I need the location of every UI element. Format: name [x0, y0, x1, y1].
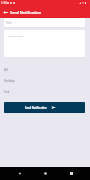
staticText: Holiday	[4, 79, 15, 83]
button[interactable]: Sick	[0, 86, 90, 97]
button[interactable]: Back	[12, 167, 26, 180]
staticText: 1:34	[1, 1, 7, 5]
staticText: Sick	[4, 90, 10, 94]
button[interactable]: Holiday	[0, 75, 90, 86]
button[interactable]: All	[0, 64, 90, 75]
button[interactable]: Title	[4, 18, 85, 27]
staticText: write your notes	[8, 35, 24, 38]
staticText: Send Notification	[25, 106, 47, 109]
button[interactable]: Back	[0, 6, 10, 18]
staticText: All	[4, 68, 8, 72]
button[interactable]: Send Notification	[4, 102, 85, 113]
button[interactable]: Home	[38, 167, 52, 180]
staticText: Send Notification	[10, 10, 42, 15]
button[interactable]: Recents	[64, 167, 78, 180]
staticText: Title	[6, 21, 12, 25]
